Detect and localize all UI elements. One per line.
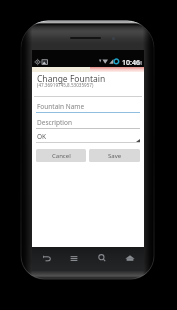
button[interactable]: Menu [60,247,88,271]
button[interactable]: Cancel [36,149,86,162]
staticText: Save [108,152,122,160]
staticText: 10:46 [122,58,140,68]
staticText: Change Fountain [37,73,106,85]
staticText: Fountain Name [37,102,85,111]
staticText: Cancel [52,152,71,160]
staticText: (47.36919745,8.53035957) [37,82,94,88]
button[interactable]: Back [32,247,60,271]
button[interactable]: OK [36,132,140,143]
staticText: PM [135,60,142,66]
button[interactable]: Save [89,149,140,162]
staticText: Description [37,118,72,127]
button[interactable]: Search [88,247,116,271]
staticText: OK [37,132,47,141]
button[interactable]: Home [116,247,144,271]
